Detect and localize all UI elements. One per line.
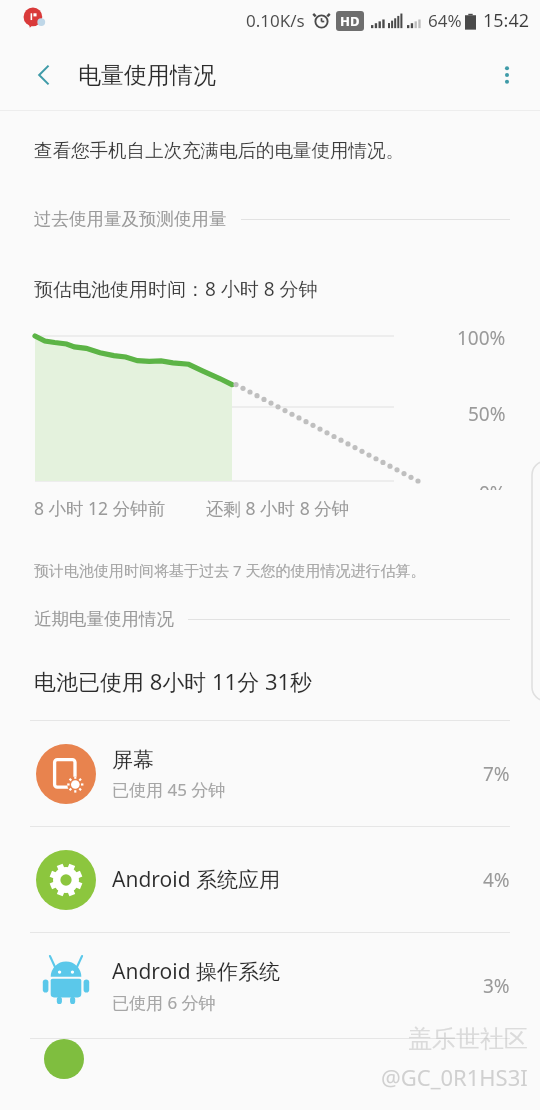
staticText: @GC_0R1HS3I [381,1062,528,1092]
staticText: HD [340,12,360,30]
button[interactable]: 屏幕 [0,721,540,826]
staticText: 屏幕 [112,747,154,773]
staticText: 电量使用情况 [78,61,216,90]
staticText: Android 系统应用 [112,865,281,894]
staticText: 64% [428,9,462,32]
staticText: 0.10K/s [246,9,305,32]
staticText: 查看您手机自上次充满电后的电量使用情况。 [34,139,404,162]
staticText: 7% [483,761,510,787]
staticText: 已使用 45 分钟 [112,778,226,801]
staticText: 已使用 6 分钟 [112,991,216,1014]
staticText: 预估电池使用时间：8 小时 8 分钟 [34,276,318,302]
staticText: 盖乐世社区 [408,1024,528,1054]
staticText: 15:42 [483,8,530,33]
button[interactable]: Android 系统应用 [0,827,540,932]
staticText: 0% [479,480,506,490]
staticText: Android 操作系统 [112,957,281,986]
staticText: 8 小时 12 分钟前 [34,496,166,520]
staticText: 50% [468,401,506,427]
staticText: 100% [457,325,506,351]
staticText: 近期电量使用情况 [34,608,174,630]
staticText: 3% [483,973,510,999]
staticText: 过去使用量及预测使用量 [34,208,227,230]
button[interactable]: More options [480,48,534,102]
staticText: 电池已使用 8小时 11分 31秒 [34,666,313,696]
staticText: 还剩 8 小时 8 分钟 [206,496,350,520]
button[interactable]: Android 操作系统 [0,933,540,1038]
staticText: 预计电池使用时间将基于过去 7 天您的使用情况进行估算。 [34,560,426,580]
staticText: 4% [483,867,510,893]
button[interactable]: Back [18,49,70,101]
